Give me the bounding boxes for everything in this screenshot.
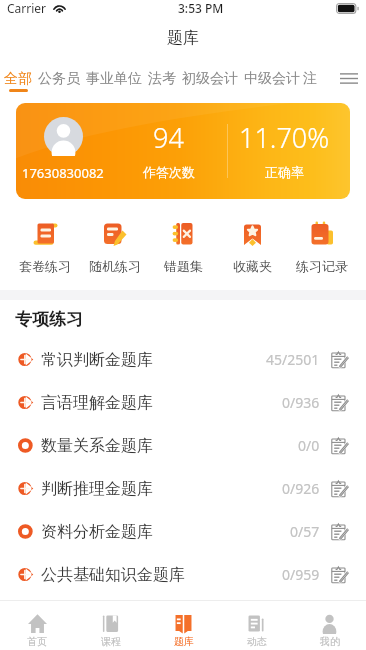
staticText: 法考	[148, 70, 176, 88]
staticText: 练习记录	[296, 258, 348, 274]
staticText: 收藏夹	[233, 258, 272, 274]
staticText: 0/57	[290, 522, 320, 541]
staticText: 0/959	[282, 565, 320, 584]
button[interactable]: 17630830082	[16, 103, 350, 199]
button[interactable]: 练习记录	[287, 221, 356, 274]
button[interactable]: 随机练习	[80, 221, 149, 274]
button[interactable]: 全部	[1, 68, 35, 90]
staticText: 45/2501	[266, 350, 320, 369]
button[interactable]: 常识判断金题库	[0, 338, 366, 381]
button[interactable]: 错题集	[149, 221, 218, 274]
button[interactable]: 中级会计	[241, 68, 303, 90]
staticText: 言语理解金题库	[41, 393, 153, 413]
button[interactable]: 课程	[74, 601, 147, 650]
staticText: 动态	[247, 635, 267, 648]
staticText: 全部	[4, 70, 32, 88]
staticText: 课程	[101, 635, 121, 648]
button[interactable]: 资料分析金题库	[0, 510, 366, 553]
button[interactable]: 动态	[220, 601, 293, 650]
button[interactable]: 判断推理金题库	[0, 467, 366, 510]
staticText: 0/926	[282, 479, 320, 498]
button[interactable]: 言语理解金题库	[0, 381, 366, 424]
button[interactable]: 题库	[147, 601, 220, 650]
button[interactable]: 公共基础知识金题库	[0, 553, 366, 596]
button[interactable]: 首页	[0, 601, 74, 650]
staticText: 专项练习	[15, 309, 83, 330]
staticText: 事业单位	[86, 70, 142, 88]
button[interactable]: More categories	[332, 68, 366, 88]
staticText: 11.70%	[239, 119, 330, 156]
staticText: 3:53 PM	[178, 0, 224, 16]
staticText: 正确率	[265, 164, 304, 180]
staticText: 首页	[27, 635, 47, 648]
button[interactable]: 事业单位	[83, 68, 145, 90]
staticText: 题库	[174, 635, 194, 648]
staticText: 公共基础知识金题库	[41, 565, 185, 585]
staticText: 常识判断金题库	[41, 350, 153, 370]
staticText: 公务员	[38, 70, 80, 88]
button[interactable]: 我的	[293, 601, 366, 650]
staticText: 资料分析金题库	[41, 522, 153, 542]
button[interactable]: 公务员	[35, 68, 83, 90]
staticText: 0/936	[282, 393, 320, 412]
staticText: 注	[303, 70, 315, 88]
staticText: 初级会计	[182, 70, 238, 88]
button[interactable]: 数量关系金题库	[0, 424, 366, 467]
staticText: 判断推理金题库	[41, 479, 153, 499]
staticText: 中级会计	[244, 70, 300, 88]
staticText: 我的	[320, 635, 340, 648]
button[interactable]: 法考	[145, 68, 179, 90]
staticText: 0/0	[298, 436, 320, 455]
staticText: 17630830082	[22, 164, 104, 182]
button[interactable]: 套卷练习	[10, 221, 80, 274]
button[interactable]: 注	[303, 68, 315, 90]
button[interactable]: 初级会计	[179, 68, 241, 90]
staticText: 数量关系金题库	[41, 436, 153, 456]
staticText: 题库	[167, 28, 199, 48]
staticText: 错题集	[164, 258, 203, 274]
staticText: 作答次数	[143, 164, 195, 180]
staticText: Carrier	[7, 0, 47, 16]
button[interactable]: 收藏夹	[218, 221, 287, 274]
staticText: 94	[153, 119, 184, 156]
staticText: 随机练习	[89, 258, 141, 274]
staticText: 套卷练习	[19, 258, 71, 274]
